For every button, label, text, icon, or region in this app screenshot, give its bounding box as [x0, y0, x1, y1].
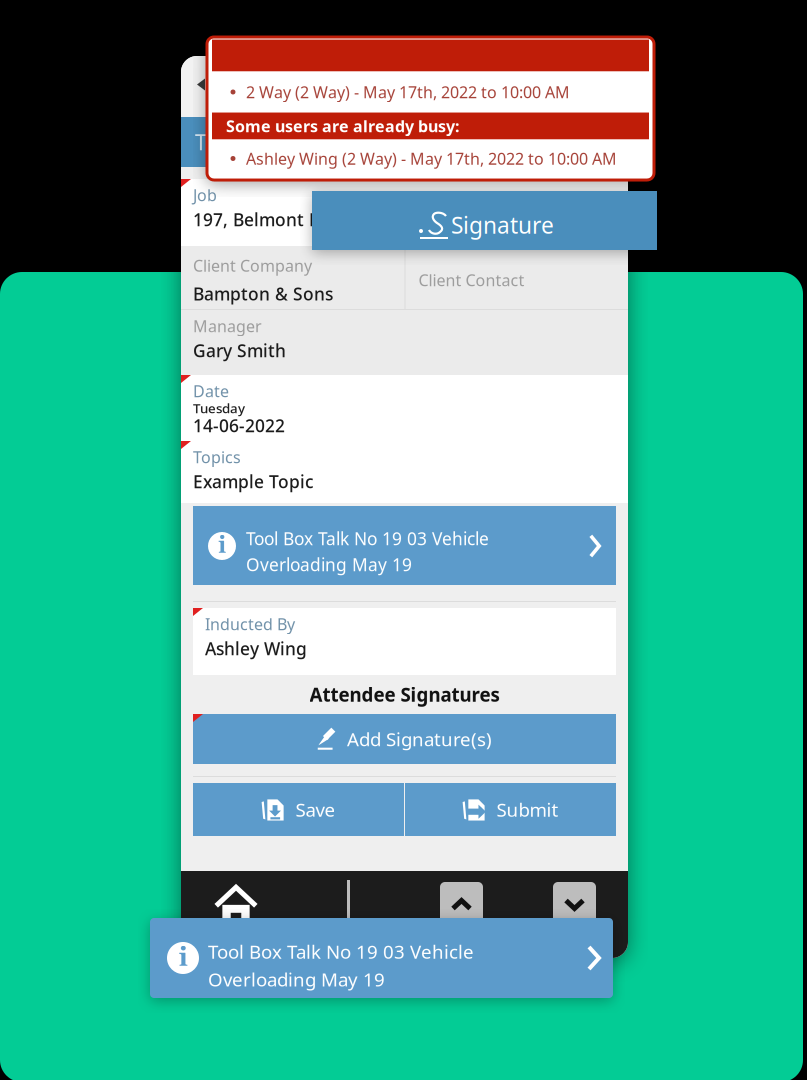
staticText: Gary Smith — [193, 339, 286, 362]
staticText: Signature — [451, 210, 554, 240]
button[interactable]: Back — [181, 59, 221, 113]
button[interactable]: Save — [193, 783, 404, 836]
button[interactable]: Next — [553, 882, 596, 927]
staticText: Job — [193, 184, 217, 206]
staticText: Ashley Wing — [205, 637, 307, 660]
staticText: 2 Way (2 Way) - May 17th, 2022 to 10:00 … — [246, 81, 570, 103]
staticText: Overloading May 19 — [246, 553, 412, 576]
staticText: Add Signature(s) — [347, 727, 492, 751]
staticText: Client Company — [193, 255, 312, 276]
staticText: Bampton & Sons — [193, 282, 333, 305]
staticText: Ashley Wing (2 Way) - May 17th, 2022 to … — [246, 148, 617, 169]
staticText: Topics — [193, 446, 241, 468]
staticText: Overloading May 19 — [208, 967, 385, 992]
staticText: Tuesday — [193, 399, 245, 417]
staticText: Manager — [193, 315, 262, 337]
button[interactable]: Previous — [440, 882, 483, 927]
staticText: Submit — [496, 797, 558, 822]
staticText: Date — [193, 380, 229, 402]
button[interactable]: i — [181, 506, 616, 585]
staticText: 14-06-2022 — [193, 414, 285, 437]
staticText: Tool Box Talk — [195, 128, 325, 156]
staticText: Example Topic — [193, 470, 314, 493]
staticText: Tool Box Talk No 19 03 Vehicle — [246, 527, 489, 550]
staticText: i — [218, 531, 226, 561]
button[interactable]: Submit — [405, 783, 616, 836]
button[interactable]: Add Signature(s) — [181, 714, 616, 764]
staticText: Attendee Signatures — [309, 682, 499, 707]
staticText: Some users are already busy: — [226, 115, 459, 137]
button[interactable]: Home — [200, 878, 272, 930]
staticText: Save — [295, 797, 335, 822]
staticText: 197, Belmont Park Road — [193, 208, 395, 231]
button[interactable]: Signature — [312, 191, 657, 250]
staticText: i — [178, 941, 187, 975]
button[interactable]: i — [150, 918, 613, 998]
staticText: Client Contact — [418, 269, 524, 291]
staticText: Inducted By — [205, 613, 295, 635]
staticText: Tool Box Talk No 19 03 Vehicle — [208, 939, 474, 964]
